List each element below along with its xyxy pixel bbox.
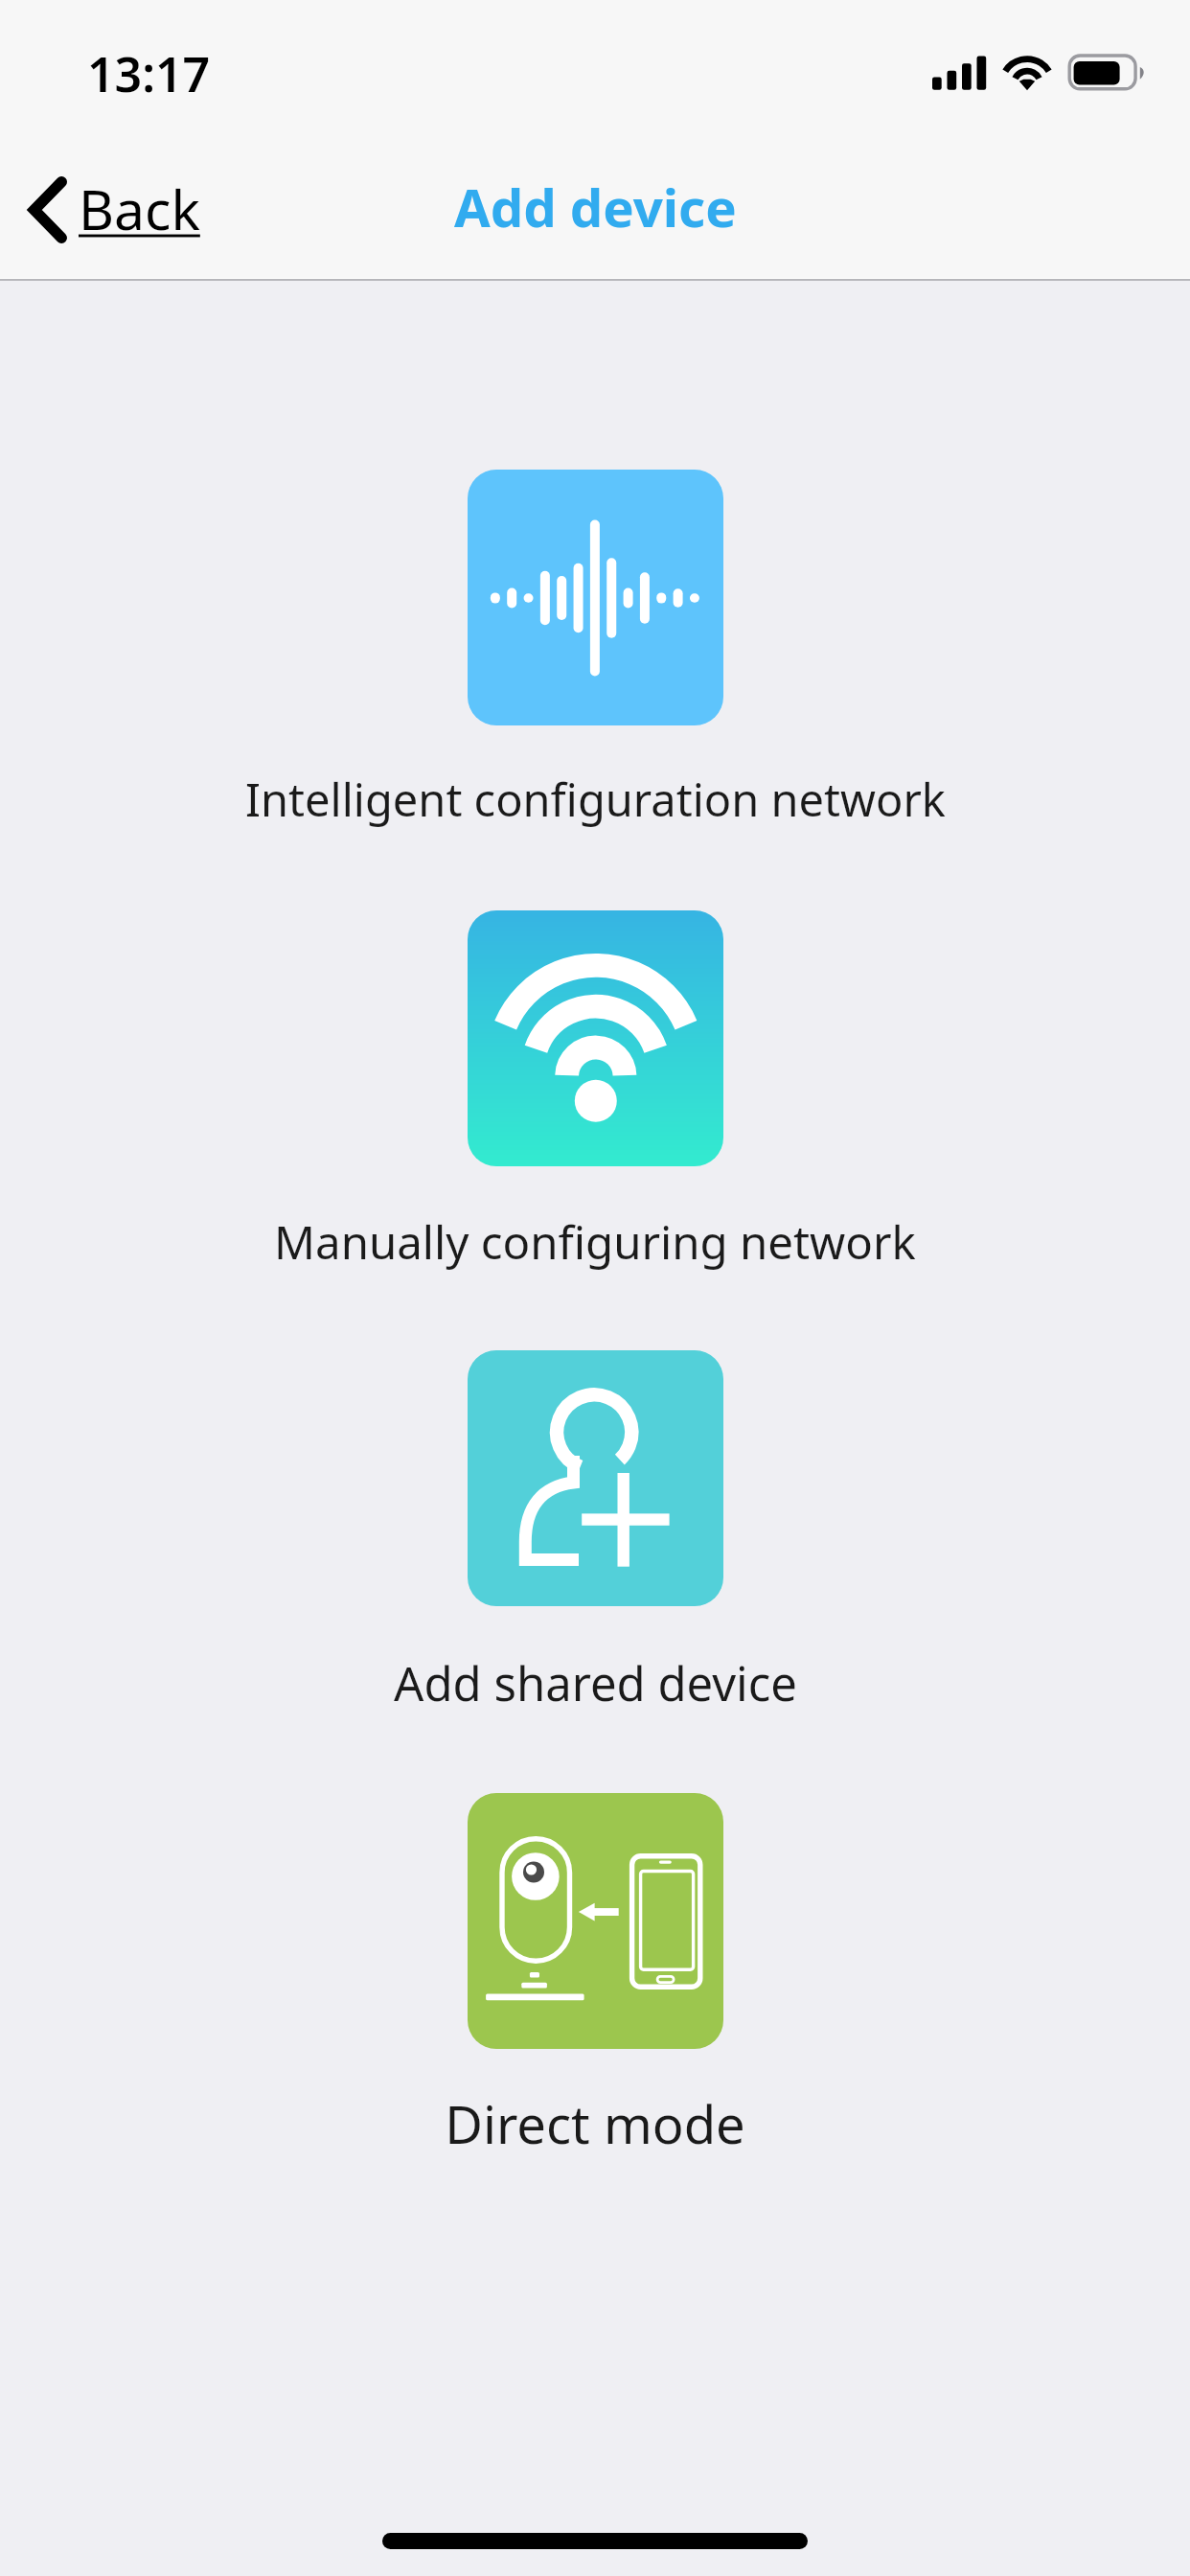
staticText: Back xyxy=(79,172,200,246)
other: Manually configuring network xyxy=(468,910,723,1166)
button[interactable]: Add shared device xyxy=(0,1350,1190,1721)
staticText: Add device xyxy=(454,172,737,242)
button[interactable]: Intelligent configuration network xyxy=(0,470,1190,840)
button[interactable]: Manually configuring network xyxy=(0,910,1190,1281)
staticText: Add shared device xyxy=(394,1651,797,1715)
button[interactable]: Back xyxy=(13,162,215,256)
other: Add shared device xyxy=(468,1350,723,1606)
staticText: 13:17 xyxy=(87,41,211,106)
staticText: Manually configuring network xyxy=(274,1210,916,1273)
button[interactable]: Direct mode xyxy=(0,1793,1190,2164)
staticText: Direct mode xyxy=(445,2088,745,2159)
other: Direct mode xyxy=(468,1793,723,2049)
staticText: Intelligent configuration network xyxy=(245,769,946,830)
other: Intelligent configuration network xyxy=(468,470,723,725)
